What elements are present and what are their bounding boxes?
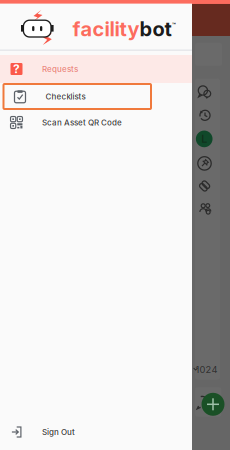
staticText: facility	[72, 17, 139, 41]
staticText: Requests	[42, 64, 78, 74]
staticText: Sign Out	[42, 427, 75, 437]
staticText: Scan Asset QR Code	[42, 118, 122, 127]
staticText: ™	[172, 22, 176, 29]
button[interactable]: Scan Asset QR Code	[0, 109, 192, 135]
staticText: bot	[139, 17, 171, 41]
staticText: ?	[13, 62, 20, 76]
button[interactable]: ?	[0, 55, 192, 83]
staticText: 1024	[195, 364, 217, 375]
button[interactable]: Checklists	[3, 84, 151, 109]
staticText: L	[201, 132, 207, 145]
staticText: Checklists	[45, 92, 85, 101]
button[interactable]: Sign Out	[0, 419, 192, 445]
